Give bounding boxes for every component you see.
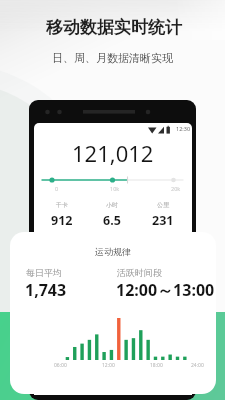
staticText: 每日平均 (26, 267, 62, 278)
staticText: 20k (171, 185, 181, 192)
staticText: 18:00 (150, 362, 163, 369)
staticText: 912 (51, 212, 73, 229)
staticText: 移动数据实时统计 (46, 17, 182, 38)
staticText: 121,012 (72, 138, 154, 168)
staticText: 12:30 (176, 125, 191, 132)
staticText: 活跃时间段 (117, 267, 162, 278)
staticText: 12:00～13:00 (116, 279, 215, 301)
staticText: 6.5 (103, 212, 121, 229)
staticText: 千卡 (56, 201, 68, 209)
staticText: 10k (110, 185, 120, 192)
staticText: 12:00 (102, 362, 115, 369)
staticText: 231 (152, 212, 174, 229)
staticText: 1,743 (25, 279, 67, 301)
staticText: 小时 (106, 201, 118, 209)
staticText: 24:00 (191, 362, 204, 369)
staticText: 公里 (157, 201, 169, 209)
staticText: 06:00 (54, 362, 67, 369)
staticText: 运动规律 (95, 246, 131, 257)
staticText: 0 (55, 185, 59, 192)
staticText: 日、周、月数据清晰实现 (52, 51, 173, 65)
